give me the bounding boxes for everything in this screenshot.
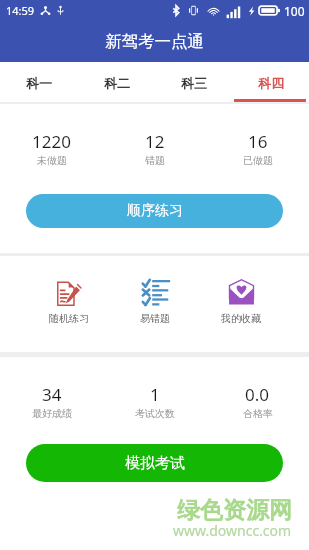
staticText: 34 [42,383,62,406]
button[interactable]: 易错题 [112,279,198,325]
staticText: 新驾考一点通 [105,31,204,52]
staticText: 考试次数 [135,407,175,420]
button[interactable]: 科四 [232,62,309,102]
staticText: 绿色资源网 [177,496,292,525]
staticText: www.downcc.com [173,521,292,540]
staticText: 14:59 [6,3,35,18]
staticText: 模拟考试 [125,454,185,473]
staticText: 顺序练习 [127,202,183,220]
button[interactable]: 科一 [0,62,78,102]
staticText: 16 [248,130,268,153]
button[interactable]: 随机练习 [25,279,112,325]
staticText: 科二 [104,75,130,91]
staticText: 合格率 [243,407,273,420]
staticText: 未做题 [37,154,67,167]
staticText: 易错题 [140,312,170,325]
button[interactable]: 我的收藏 [198,279,284,325]
staticText: 12 [145,130,165,153]
staticText: 随机练习 [49,312,89,325]
staticText: 科四 [258,75,284,91]
staticText: 已做题 [243,154,273,167]
staticText: 科三 [181,75,207,91]
staticText: 100 [284,3,305,19]
staticText: 1 [150,383,160,406]
staticText: 我的收藏 [221,312,261,325]
button[interactable]: 顺序练习 [26,194,283,228]
button[interactable]: 科三 [155,62,232,102]
staticText: 0.0 [245,383,270,406]
staticText: 科一 [26,75,52,91]
staticText: 最好成绩 [32,407,72,420]
staticText: 错题 [145,154,165,167]
button[interactable]: 模拟考试 [26,444,283,482]
button[interactable]: 科二 [78,62,155,102]
staticText: 1220 [32,130,71,153]
